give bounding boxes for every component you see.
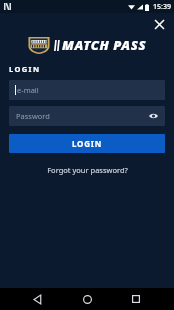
button[interactable]: Show password [145,108,161,124]
staticText: Forgot your password? [47,165,128,175]
button[interactable]: Close [150,15,168,33]
staticText: MATCH PASS [62,36,147,54]
button[interactable]: LOGIN [9,134,165,153]
button[interactable]: Forgot your password? [44,162,131,178]
staticText: LOGIN [9,64,41,74]
button[interactable]: e-mail [9,80,165,100]
button[interactable]: Back [27,288,49,310]
button[interactable]: Home [76,288,98,310]
staticText: LOGIN [72,138,103,149]
button[interactable]: Recents [125,288,147,310]
button[interactable]: Password [9,106,165,126]
staticText: e-mail [17,85,39,95]
staticText: 15:39 [153,2,171,12]
staticText: Password [16,111,50,121]
